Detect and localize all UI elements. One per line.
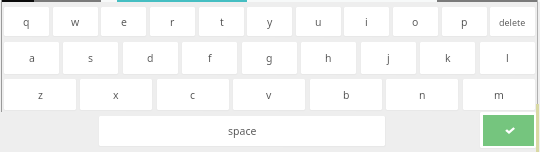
staticText: e (121, 15, 127, 29)
staticText: s (88, 51, 94, 65)
button[interactable]: p (442, 7, 487, 36)
staticText: l (506, 51, 509, 65)
staticText: q (23, 15, 30, 29)
staticText: v (266, 88, 272, 102)
button[interactable]: space (99, 116, 385, 146)
button[interactable]: s (63, 42, 118, 74)
button[interactable]: w (53, 7, 98, 36)
staticText: w (71, 15, 80, 29)
button[interactable]: f (182, 42, 237, 74)
button[interactable]: z (4, 79, 76, 110)
button[interactable]: o (393, 7, 438, 36)
staticText: j (387, 51, 390, 65)
staticText: f (208, 51, 212, 65)
button[interactable]: h (301, 42, 356, 74)
staticText: z (38, 88, 43, 102)
button[interactable]: t (199, 7, 244, 36)
staticText: b (343, 88, 350, 102)
staticText: t (220, 15, 224, 29)
staticText: delete (499, 16, 526, 28)
button[interactable]: m (463, 79, 535, 110)
button[interactable]: u (296, 7, 341, 36)
staticText: n (419, 88, 426, 102)
button[interactable]: q (4, 7, 49, 36)
staticText: y (267, 15, 273, 29)
button[interactable]: d (123, 42, 178, 74)
staticText: x (113, 88, 119, 102)
staticText: o (412, 15, 419, 29)
button[interactable]: k (420, 42, 475, 74)
staticText: h (325, 51, 332, 65)
button[interactable]: c (157, 79, 229, 110)
button[interactable]: Done (480, 112, 536, 148)
button[interactable]: delete (490, 7, 535, 36)
staticText: space (228, 124, 257, 138)
button[interactable]: a (4, 42, 59, 74)
button[interactable]: g (242, 42, 297, 74)
staticText: p (461, 15, 468, 29)
button[interactable]: r (150, 7, 195, 36)
button[interactable]: n (386, 79, 458, 110)
staticText: g (266, 51, 273, 65)
button[interactable]: x (80, 79, 152, 110)
staticText: c (190, 88, 196, 102)
staticText: d (147, 51, 154, 65)
staticText: i (365, 15, 368, 29)
button[interactable]: v (233, 79, 305, 110)
button[interactable]: b (310, 79, 382, 110)
staticText: k (445, 51, 451, 65)
button[interactable]: e (101, 7, 146, 36)
button[interactable]: y (247, 7, 292, 36)
button[interactable]: l (480, 42, 535, 74)
button[interactable]: i (344, 7, 389, 36)
staticText: a (29, 51, 35, 65)
button[interactable]: j (361, 42, 416, 74)
staticText: m (494, 88, 504, 102)
staticText: u (315, 15, 322, 29)
staticText: r (170, 15, 175, 29)
